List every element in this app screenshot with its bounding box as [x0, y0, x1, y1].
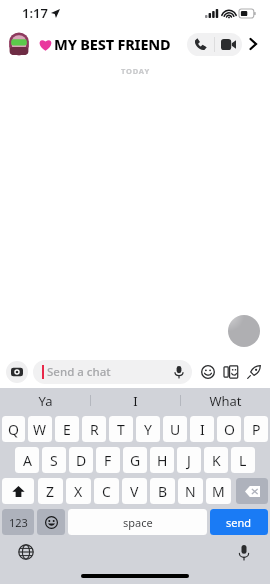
staticText: V [130, 482, 139, 501]
button[interactable]: I [91, 388, 180, 413]
button[interactable]: D [69, 447, 93, 473]
button[interactable]: T [109, 416, 133, 442]
staticText: P [252, 420, 261, 439]
staticText: E [63, 420, 71, 439]
staticText: U [170, 420, 181, 439]
staticText: I [133, 392, 138, 410]
button[interactable]: 123 [2, 509, 34, 535]
button[interactable]: R [82, 416, 106, 442]
button[interactable]: What [181, 388, 270, 413]
staticText: J [187, 451, 191, 470]
button[interactable]: More [242, 33, 264, 55]
staticText: I [200, 420, 205, 439]
staticText: T [117, 420, 125, 439]
button[interactable]: Voice input [234, 542, 254, 562]
button[interactable]: C [94, 478, 119, 504]
button[interactable]: Emoji keyboard [37, 509, 65, 535]
staticText: 1:17 [22, 4, 48, 22]
button[interactable]: Stickers [221, 362, 241, 382]
button[interactable]: L [231, 447, 255, 473]
button[interactable]: Camera [6, 361, 28, 383]
button[interactable]: Ya [0, 388, 90, 413]
staticText: Send a chat [47, 364, 175, 380]
button[interactable]: send [210, 509, 268, 535]
staticText: O [224, 420, 235, 439]
button[interactable]: Y [136, 416, 160, 442]
button[interactable]: Q [2, 416, 25, 442]
button[interactable]: W [28, 416, 52, 442]
staticText: F [104, 451, 112, 470]
button[interactable]: Change keyboard [16, 542, 36, 562]
button[interactable]: Sent snap [228, 315, 260, 347]
staticText: space [123, 515, 153, 530]
button[interactable]: O [217, 416, 241, 442]
button[interactable]: N [178, 478, 203, 504]
staticText: R [90, 420, 99, 439]
staticText: G [130, 451, 141, 470]
staticText: Ya [38, 392, 53, 410]
button[interactable]: space [68, 509, 207, 535]
staticText: MY BEST FRIEND [54, 34, 187, 54]
button[interactable]: Z [38, 478, 63, 504]
button[interactable]: U [163, 416, 187, 442]
button[interactable]: Backspace [236, 478, 268, 504]
staticText: S [50, 451, 58, 470]
staticText: 123 [9, 515, 28, 530]
button[interactable]: G [123, 447, 147, 473]
button[interactable]: Send a snap [244, 362, 264, 382]
staticText: X [74, 482, 83, 501]
staticText: Q [8, 420, 19, 439]
staticText: L [239, 451, 247, 470]
button[interactable]: E [55, 416, 79, 442]
staticText: TODAY [121, 66, 150, 76]
button[interactable]: Video call [215, 33, 242, 56]
button[interactable]: K [204, 447, 228, 473]
button[interactable]: Profile [6, 31, 32, 57]
button[interactable]: Call [187, 33, 214, 56]
staticText: D [76, 451, 87, 470]
staticText: W [33, 420, 47, 439]
staticText: B [158, 482, 168, 501]
staticText: Z [46, 482, 55, 501]
button[interactable]: S [42, 447, 66, 473]
button[interactable]: A [15, 447, 39, 473]
button[interactable]: M [206, 478, 231, 504]
staticText: send [226, 515, 252, 530]
button[interactable]: I [190, 416, 214, 442]
staticText: N [185, 482, 196, 501]
button[interactable]: X [66, 478, 91, 504]
staticText: Y [144, 420, 152, 439]
button[interactable]: Emoji [198, 362, 218, 382]
staticText: M [212, 482, 225, 501]
button[interactable]: F [96, 447, 120, 473]
staticText: C [102, 482, 111, 501]
button[interactable]: Send a chat [42, 360, 183, 384]
button[interactable]: B [150, 478, 175, 504]
button[interactable]: Shift [2, 478, 34, 504]
button[interactable]: J [177, 447, 201, 473]
staticText: What [209, 392, 242, 410]
button[interactable]: P [244, 416, 268, 442]
button[interactable]: V [122, 478, 147, 504]
staticText: K [212, 451, 221, 470]
staticText: A [23, 451, 32, 470]
staticText: H [157, 451, 168, 470]
button[interactable]: H [150, 447, 174, 473]
